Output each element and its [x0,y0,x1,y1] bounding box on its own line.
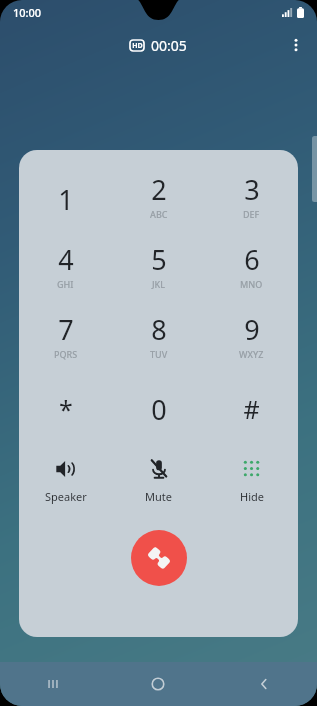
staticText: # [243,392,260,426]
staticText: Speaker [45,489,87,504]
staticText: DEF [243,208,260,220]
staticText: GHI [57,278,74,290]
staticText: PQRS [54,348,78,360]
button[interactable]: 7 [19,304,112,374]
staticText: 10:00 [13,5,42,20]
button[interactable]: # [205,374,298,444]
button[interactable]: 0 [112,374,205,444]
staticText: JKL [152,278,166,290]
staticText: 6 [244,241,260,278]
staticText: 7 [58,311,74,348]
staticText: 9 [244,311,260,348]
staticText: 00:05 [151,36,187,55]
staticText: ABC [150,208,168,220]
button[interactable]: 1 [19,164,112,234]
staticText: 0 [151,391,167,428]
button[interactable]: More options [282,31,310,59]
staticText: MNO [240,278,263,290]
button[interactable]: Hide [205,452,298,508]
button[interactable]: Speaker [19,452,112,508]
button[interactable]: Recent apps [0,662,105,706]
staticText: 1 [58,181,74,218]
button[interactable]: Back [211,662,317,706]
button[interactable]: 9 [205,304,298,374]
button[interactable]: 6 [205,234,298,304]
button[interactable]: Home [105,662,211,706]
staticText: TUV [150,348,168,360]
staticText: WXYZ [239,348,264,360]
staticText: 4 [58,241,74,278]
button[interactable]: 2 [112,164,205,234]
staticText: 8 [151,311,167,348]
staticText: * [59,392,73,426]
staticText: 5 [151,241,167,278]
button[interactable]: 5 [112,234,205,304]
staticText: 3 [244,171,260,208]
button[interactable]: 4 [19,234,112,304]
staticText: 2 [151,171,167,208]
staticText: HD [132,41,143,51]
staticText: Mute [145,489,172,504]
button[interactable]: End call [131,530,187,586]
staticText: Hide [240,489,264,504]
button[interactable]: Mute [112,452,205,508]
button[interactable]: * [19,374,112,444]
button[interactable]: 3 [205,164,298,234]
button[interactable]: 8 [112,304,205,374]
